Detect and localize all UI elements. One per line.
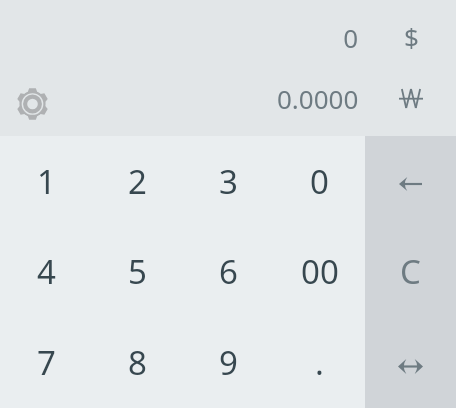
staticText: 0.0000 [277,81,359,116]
button[interactable]: 5 [92,226,183,317]
button[interactable]: 1 [0,136,92,226]
button[interactable]: 3 [183,136,274,226]
button[interactable]: 7 [0,317,92,408]
staticText: 7 [37,340,56,385]
button[interactable]: 8 [92,317,183,408]
staticText: $ [404,19,419,54]
staticText: 6 [219,249,238,294]
staticText: 5 [128,249,147,294]
staticText: 0 [343,20,358,55]
staticText: 2 [128,159,147,204]
button[interactable]: 0 [274,136,365,226]
button[interactable]: $ [365,0,456,68]
staticText: 3 [219,159,238,204]
button[interactable]: 6 [183,226,274,317]
staticText: 00 [301,249,339,294]
button[interactable]: 4 [0,226,92,317]
staticText: . [315,340,324,385]
staticText: 4 [37,249,56,294]
button[interactable]: Settings [8,80,56,128]
button[interactable]: 0 [0,0,365,68]
staticText: 8 [128,340,147,385]
button[interactable]: Swap currencies [365,317,456,408]
staticText: C [400,249,421,294]
button[interactable]: Target currency: Korean won [365,68,456,136]
staticText: 1 [37,159,56,204]
button[interactable]: 00 [274,226,365,317]
button[interactable]: 2 [92,136,183,226]
button[interactable]: . [274,317,365,408]
staticText: 0 [310,159,329,204]
button[interactable]: Backspace [365,136,456,226]
staticText: 9 [219,340,238,385]
button[interactable]: 0.0000 [64,68,365,136]
button[interactable]: 9 [183,317,274,408]
button[interactable]: C [365,226,456,317]
